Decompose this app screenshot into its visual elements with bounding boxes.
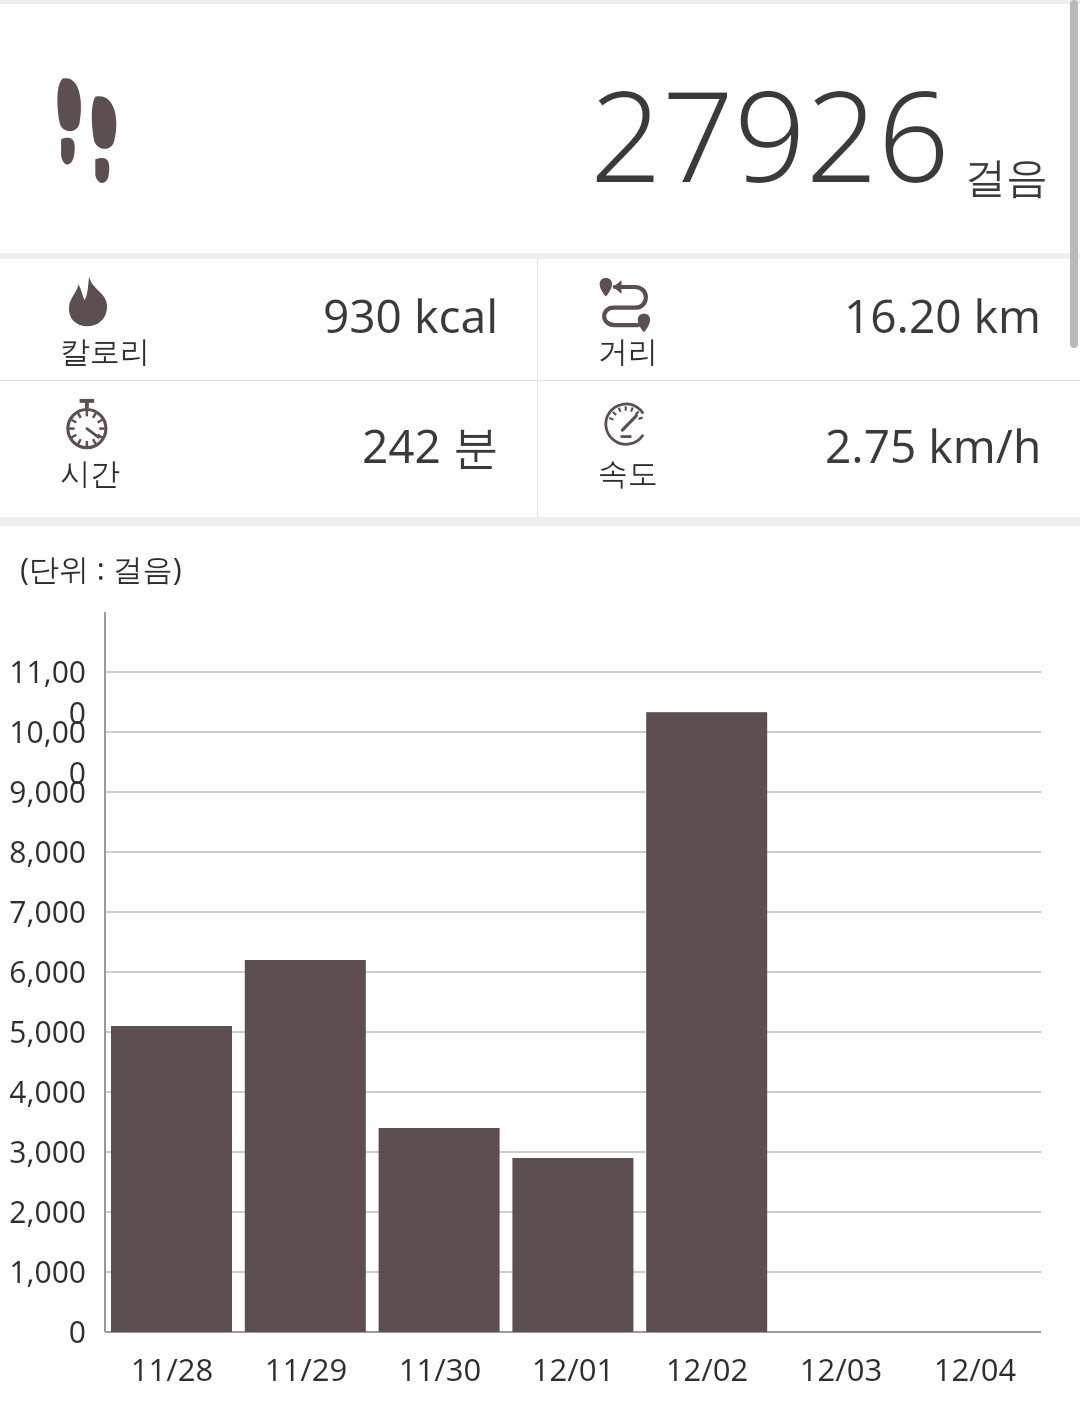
staticText: 12/04 <box>908 1348 1042 1390</box>
button[interactable]: Time <box>0 381 537 517</box>
staticText: 5,000 <box>0 1011 86 1052</box>
button[interactable]: Speed <box>538 381 1080 517</box>
staticText: 27926 <box>590 47 950 219</box>
staticText: 242 분 <box>362 414 499 477</box>
staticText: 11,000 <box>0 651 86 733</box>
other: Steps <box>55 72 127 184</box>
other: Calories <box>60 273 116 329</box>
other: Speed <box>598 395 654 451</box>
staticText: 0 <box>0 1311 86 1352</box>
button[interactable]: Calories <box>0 259 537 380</box>
staticText: 12/03 <box>774 1348 908 1390</box>
other: Distance <box>598 273 654 329</box>
staticText: 9,000 <box>0 771 86 812</box>
staticText: 12/01 <box>506 1348 640 1390</box>
staticText: 1,000 <box>0 1251 86 1292</box>
button[interactable]: Distance <box>538 259 1080 380</box>
staticText: 2.75 km/h <box>825 414 1042 477</box>
other: Time <box>60 395 116 451</box>
staticText: 걸음 <box>964 152 1048 205</box>
staticText: 11/28 <box>105 1348 239 1390</box>
staticText: 2,000 <box>0 1191 86 1232</box>
staticText: 6,000 <box>0 951 86 992</box>
staticText: (단위 : 걸음) <box>20 548 182 589</box>
button[interactable]: Steps <box>0 4 1080 253</box>
staticText: 4,000 <box>0 1071 86 1112</box>
staticText: 10,000 <box>0 711 86 793</box>
staticText: 시간 <box>60 455 120 493</box>
staticText: 930 kcal <box>323 284 499 347</box>
staticText: 칼로리 <box>60 333 150 371</box>
staticText: 3,000 <box>0 1131 86 1172</box>
staticText: 거리 <box>598 333 658 371</box>
staticText: 11/30 <box>373 1348 507 1390</box>
staticText: 11/29 <box>239 1348 373 1390</box>
staticText: 16.20 km <box>844 284 1042 347</box>
staticText: 속도 <box>598 455 658 493</box>
staticText: 12/02 <box>640 1348 774 1390</box>
staticText: 8,000 <box>0 831 86 872</box>
staticText: 7,000 <box>0 891 86 932</box>
